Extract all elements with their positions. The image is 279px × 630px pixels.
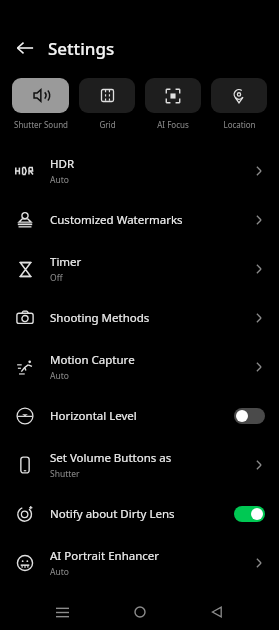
button[interactable] bbox=[12, 78, 69, 113]
button[interactable]: Notify about Dirty Lens bbox=[0, 489, 279, 538]
staticText: Motion Capture bbox=[50, 352, 135, 368]
staticText: Grid bbox=[99, 119, 116, 130]
button[interactable] bbox=[211, 78, 267, 113]
button[interactable]: Back bbox=[8, 31, 42, 65]
button[interactable]: Toggle off bbox=[234, 408, 265, 424]
button[interactable]: Toggle on bbox=[234, 506, 265, 522]
staticText: Customized Watermarks bbox=[50, 212, 183, 228]
button[interactable]: AI Portrait Enhancer bbox=[0, 538, 279, 587]
button[interactable]: Timer bbox=[0, 244, 279, 293]
button[interactable]: Back bbox=[202, 597, 232, 627]
button[interactable] bbox=[79, 78, 135, 113]
button[interactable] bbox=[145, 78, 201, 113]
button[interactable]: Set Volume Buttons as bbox=[0, 440, 279, 489]
button[interactable]: Motion Capture bbox=[0, 342, 279, 391]
staticText: HDR bbox=[50, 156, 75, 172]
staticText: Horizontal Level bbox=[50, 408, 137, 424]
staticText: Notify about Dirty Lens bbox=[50, 506, 175, 522]
button[interactable]: Horizontal Level bbox=[0, 391, 279, 440]
button[interactable]: Customized Watermarks bbox=[0, 195, 279, 244]
staticText: Off bbox=[50, 272, 63, 284]
staticText: Shutter bbox=[50, 468, 80, 480]
staticText: Set Volume Buttons as bbox=[50, 450, 172, 466]
button[interactable]: Home bbox=[125, 597, 155, 627]
staticText: Location bbox=[223, 119, 256, 130]
staticText: Shooting Methods bbox=[50, 310, 150, 326]
staticText: AI Focus bbox=[157, 119, 189, 130]
staticText: Settings bbox=[48, 37, 115, 60]
button[interactable]: Recents bbox=[47, 597, 77, 627]
button[interactable]: HDR bbox=[0, 146, 279, 195]
button[interactable]: Shooting Methods bbox=[0, 293, 279, 342]
staticText: Auto bbox=[50, 174, 69, 186]
staticText: Auto bbox=[50, 566, 69, 578]
staticText: Auto bbox=[50, 370, 69, 382]
staticText: AI Portrait Enhancer bbox=[50, 548, 160, 564]
staticText: Shutter Sound bbox=[14, 119, 68, 130]
staticText: Timer bbox=[50, 254, 82, 270]
